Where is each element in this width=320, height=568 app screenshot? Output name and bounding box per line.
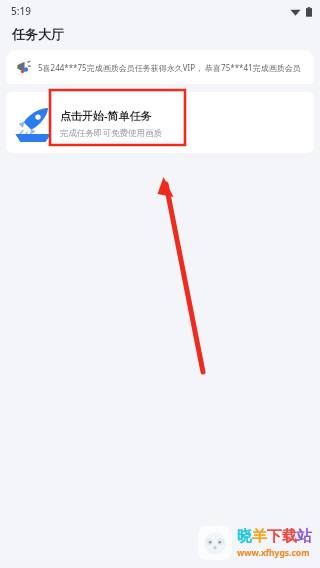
staticText: 晓: [237, 527, 252, 546]
staticText: 羊: [252, 527, 267, 546]
other: Announcement: [14, 59, 31, 76]
staticText: 载: [282, 527, 297, 546]
staticText: 5喜244***75完成画质会员任务获得永久VIP， 恭喜75***41完成画质…: [38, 62, 308, 73]
staticText: 5:19: [11, 4, 31, 18]
staticText: 站: [297, 527, 312, 546]
staticText: www.xfhygs.com: [237, 547, 310, 559]
staticText: 点击开始-简单任务: [60, 108, 152, 123]
staticText: 完成任务即可免费使用画质: [60, 128, 162, 139]
other: Rocket task: [12, 102, 54, 144]
staticText: 下: [267, 527, 282, 546]
staticText: 任务大厅: [12, 26, 64, 42]
button[interactable]: Rocket task: [6, 92, 314, 153]
button[interactable]: Announcement: [6, 50, 314, 84]
